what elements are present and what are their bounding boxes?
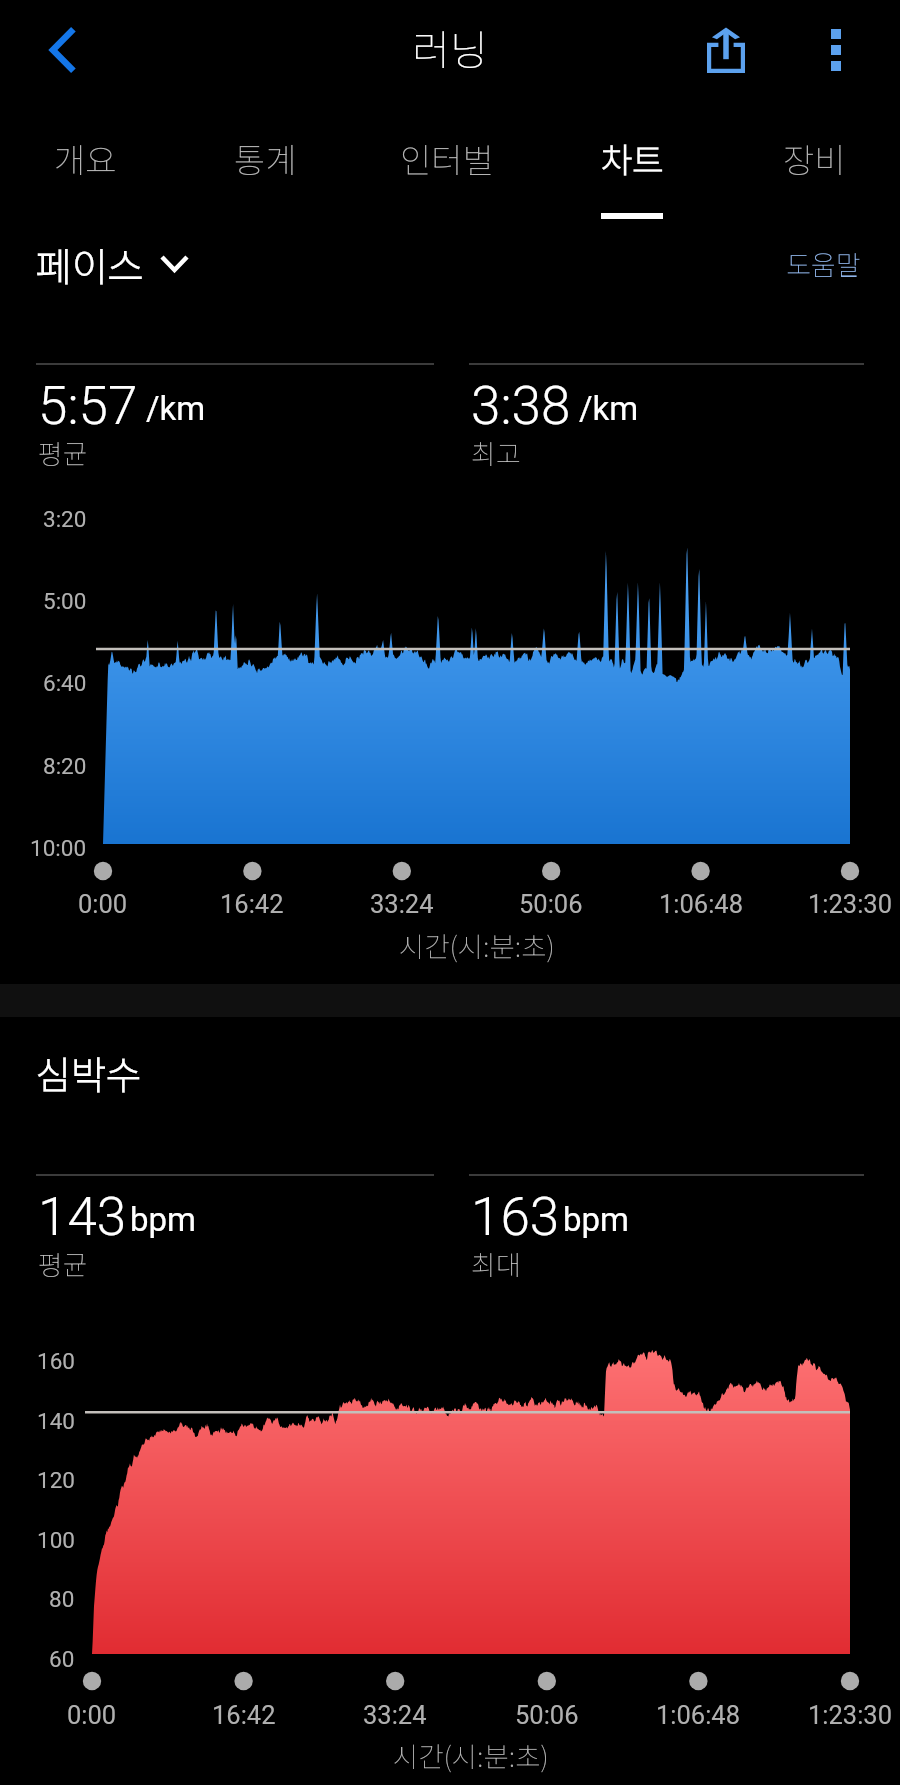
staticText: 60 — [49, 1646, 75, 1672]
button[interactable]: 차트 — [542, 120, 722, 220]
staticText: 인터벌 — [400, 134, 494, 183]
button[interactable]: 장비 — [724, 120, 900, 220]
staticText: 평균 — [38, 1244, 88, 1283]
button[interactable]: 페이스 — [36, 236, 189, 292]
staticText: bpm — [130, 1200, 196, 1239]
staticText: 80 — [49, 1586, 75, 1612]
staticText: 장비 — [783, 134, 846, 183]
staticText: 50:06 — [519, 889, 583, 919]
staticText: 163 — [471, 1186, 560, 1248]
staticText: 심박수 — [36, 1045, 141, 1100]
staticText: bpm — [563, 1200, 629, 1239]
staticText: 143 — [38, 1186, 127, 1248]
staticText: 5:00 — [43, 588, 87, 614]
button[interactable]: 인터벌 — [357, 120, 537, 220]
button[interactable]: 개요 — [0, 120, 175, 220]
staticText: 평균 — [38, 433, 88, 472]
staticText: 시간(시:분:초) — [393, 1735, 549, 1775]
button[interactable]: 도움말 — [786, 244, 861, 283]
staticText: 50:06 — [515, 1700, 579, 1730]
staticText: 120 — [37, 1467, 75, 1493]
staticText: 1:23:30 — [808, 889, 893, 919]
button[interactable]: More options — [788, 0, 884, 100]
staticText: 6:40 — [43, 670, 87, 696]
staticText: 3:20 — [43, 506, 87, 532]
staticText: 33:24 — [370, 889, 434, 919]
staticText: /km — [579, 389, 639, 428]
staticText: /km — [146, 389, 206, 428]
staticText: 160 — [37, 1348, 75, 1374]
staticText: 5:57 — [38, 375, 138, 437]
staticText: 개요 — [54, 134, 117, 183]
staticText: 통계 — [234, 134, 297, 183]
staticText: 러닝 — [0, 17, 900, 76]
staticText: 시간(시:분:초) — [399, 925, 555, 965]
staticText: 1:06:48 — [656, 1700, 741, 1730]
staticText: 10:00 — [30, 835, 87, 861]
staticText: 8:20 — [43, 753, 87, 779]
staticText: 최대 — [471, 1244, 521, 1283]
staticText: 최고 — [471, 433, 521, 472]
button[interactable]: Back — [14, 0, 110, 100]
staticText: 100 — [37, 1527, 75, 1553]
staticText: 0:00 — [67, 1700, 117, 1730]
staticText: 페이스 — [36, 236, 144, 292]
staticText: 33:24 — [363, 1700, 427, 1730]
staticText: 1:06:48 — [659, 889, 744, 919]
button[interactable]: 통계 — [175, 120, 355, 220]
staticText: 140 — [37, 1408, 75, 1434]
staticText: 0:00 — [78, 889, 128, 919]
staticText: 1:23:30 — [808, 1700, 893, 1730]
button[interactable]: Share — [678, 0, 774, 100]
staticText: 16:42 — [220, 889, 284, 919]
staticText: 16:42 — [212, 1700, 276, 1730]
staticText: 차트 — [601, 134, 664, 183]
staticText: 3:38 — [471, 375, 571, 437]
